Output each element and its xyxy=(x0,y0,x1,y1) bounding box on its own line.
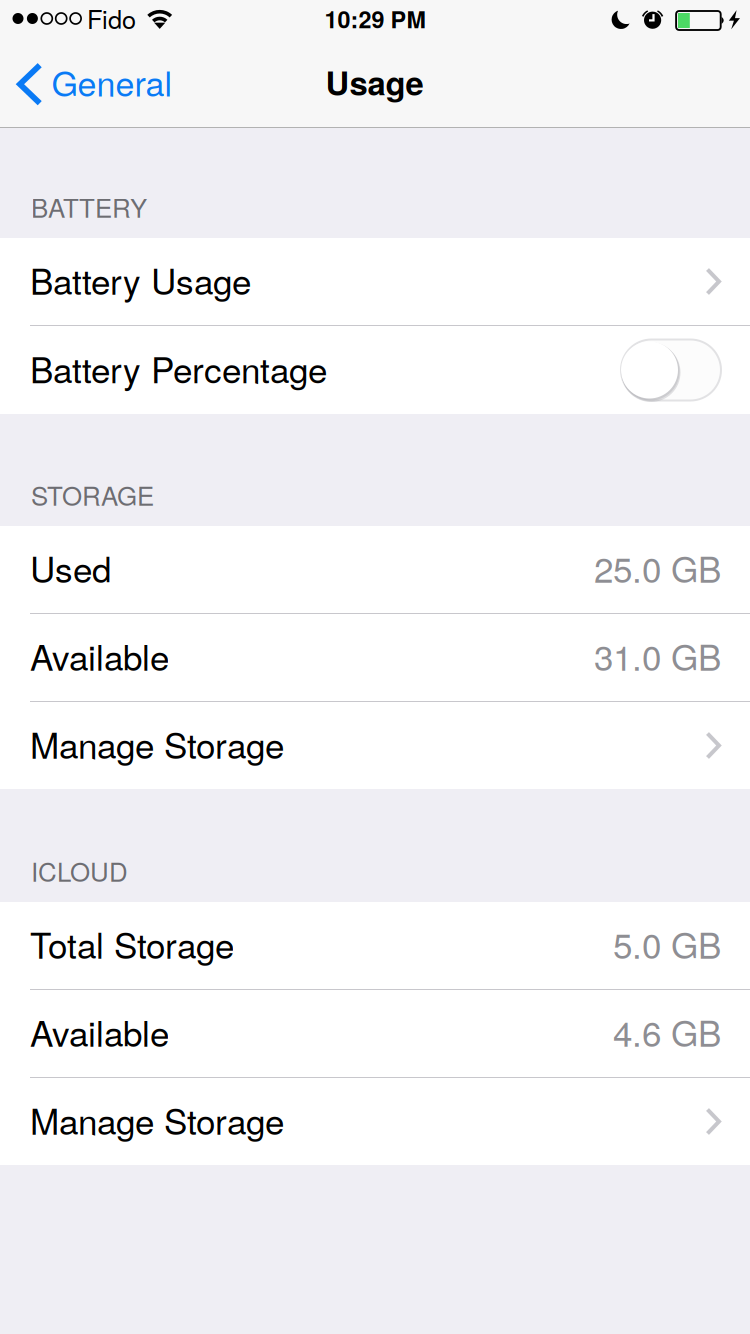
button[interactable]: Manage Storage xyxy=(0,702,750,789)
staticText: Used xyxy=(30,542,111,593)
staticText: Usage xyxy=(325,58,423,105)
button[interactable]: Used xyxy=(0,526,750,613)
staticText: BATTERY xyxy=(31,188,147,225)
staticText: 4.6 GB xyxy=(613,1006,721,1057)
staticText: Total Storage xyxy=(30,918,234,969)
button[interactable]: Manage Storage xyxy=(0,1078,750,1165)
staticText: ICLOUD xyxy=(31,852,128,889)
button[interactable]: Total Storage xyxy=(0,902,750,989)
staticText: Available xyxy=(30,1006,169,1057)
staticText: 31.0 GB xyxy=(594,630,721,681)
staticText: 25.0 GB xyxy=(594,542,721,593)
staticText: Fido xyxy=(87,0,136,36)
button[interactable]: Battery Usage xyxy=(0,238,750,325)
button[interactable]: Available xyxy=(0,990,750,1077)
staticText: Battery Usage xyxy=(30,254,251,305)
button[interactable]: General xyxy=(0,46,210,128)
button[interactable]: Available xyxy=(0,614,750,701)
staticText: STORAGE xyxy=(31,476,154,513)
staticText: 5.0 GB xyxy=(613,918,721,969)
staticText: Manage Storage xyxy=(30,1094,284,1145)
staticText: Battery Percentage xyxy=(30,343,327,393)
staticText: General xyxy=(51,57,172,106)
button[interactable]: Battery Percentage xyxy=(0,326,750,414)
staticText: 10:29 PM xyxy=(324,2,425,35)
staticText: Manage Storage xyxy=(30,718,284,769)
staticText: Available xyxy=(30,630,169,681)
